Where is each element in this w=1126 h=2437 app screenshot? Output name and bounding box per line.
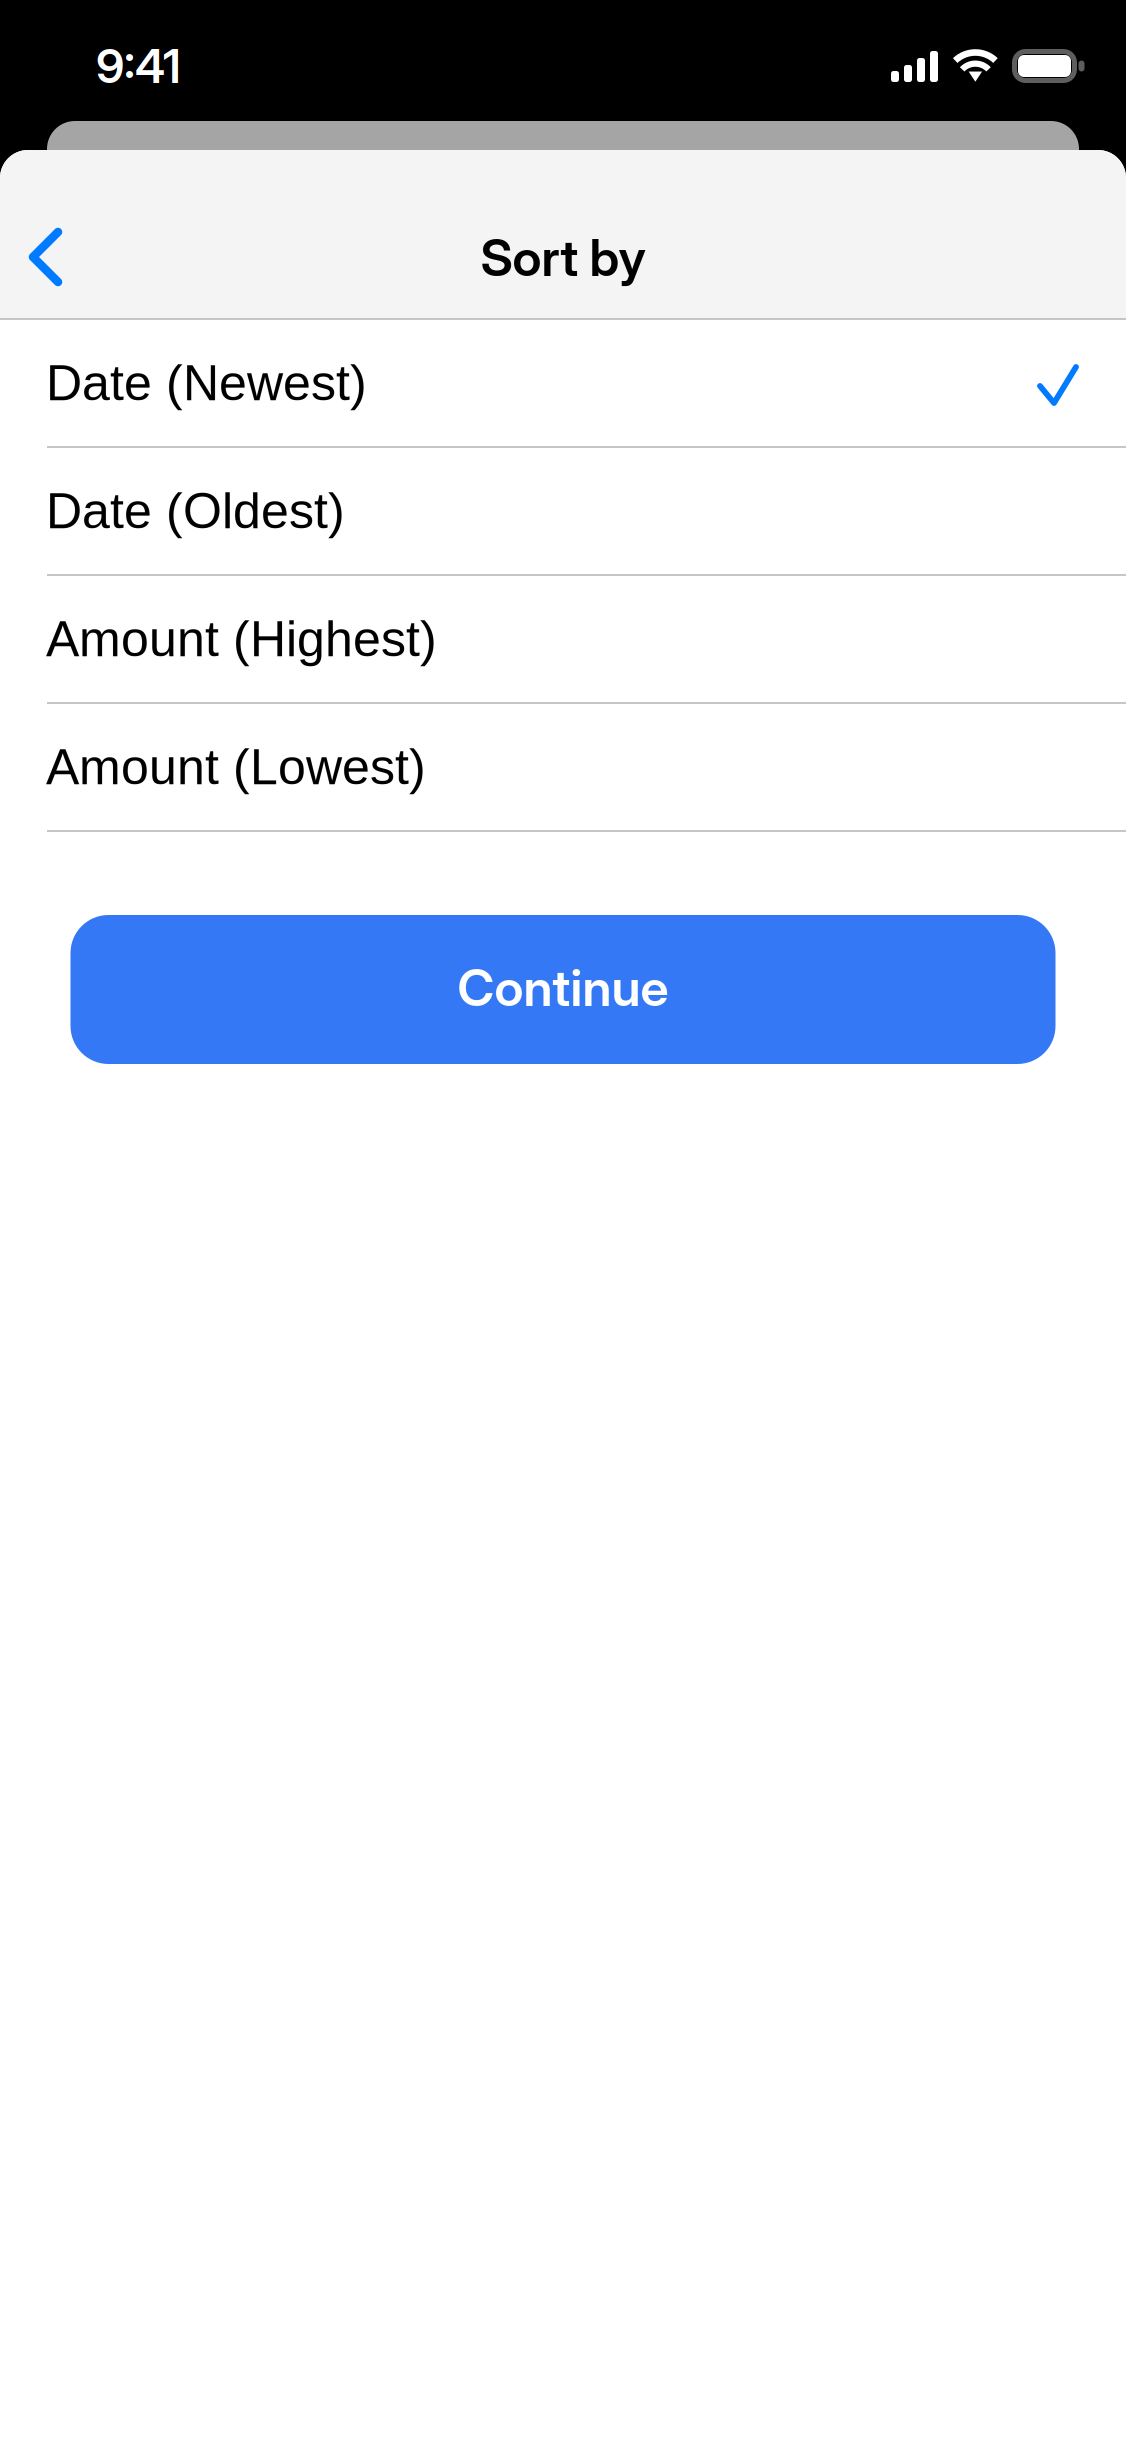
button[interactable]: Amount (Lowest) [0,704,1126,832]
button[interactable]: Back [0,150,107,316]
staticText: Amount (Highest) [46,611,437,667]
staticText: Amount (Lowest) [46,739,426,795]
staticText: Date (Newest) [46,355,367,411]
staticText: Continue [457,957,668,1018]
button[interactable]: Continue [70,915,1055,1064]
staticText: Date (Oldest) [46,483,345,539]
staticText: Sort by [480,227,645,288]
button[interactable]: Date (Oldest) [0,448,1126,576]
button[interactable]: Amount (Highest) [0,576,1126,704]
staticText: 9:41 [96,38,181,94]
button[interactable]: Date (Newest) [0,320,1126,448]
